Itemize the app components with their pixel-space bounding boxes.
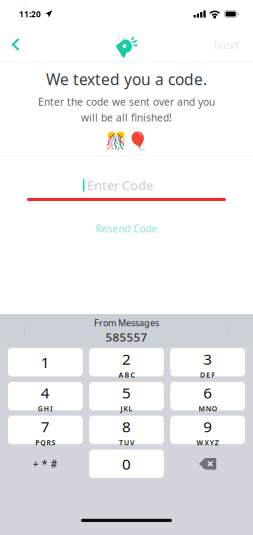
button[interactable]: 5 bbox=[89, 382, 164, 410]
staticText: GHI bbox=[38, 404, 53, 413]
button[interactable]: Next bbox=[206, 28, 247, 61]
staticText: We texted you a code. bbox=[46, 69, 207, 90]
button[interactable]: Delete bbox=[170, 449, 245, 478]
staticText: 2 bbox=[122, 348, 131, 369]
button[interactable]: 6 bbox=[170, 382, 245, 410]
staticText: WXYZ bbox=[196, 438, 219, 447]
staticText: Enter the code we sent over and you bbox=[38, 95, 215, 109]
button[interactable]: 0 bbox=[89, 449, 164, 478]
staticText: + * # bbox=[33, 457, 58, 471]
staticText: Next bbox=[214, 37, 239, 52]
staticText: MNO bbox=[198, 404, 217, 413]
staticText: ABC bbox=[118, 370, 135, 379]
staticText: DEF bbox=[200, 370, 215, 379]
staticText: 7 bbox=[41, 416, 50, 437]
button[interactable]: Resend Code bbox=[83, 217, 169, 240]
button[interactable]: 2 bbox=[89, 348, 164, 376]
button[interactable]: 4 bbox=[8, 382, 83, 410]
staticText: 4 bbox=[41, 382, 50, 403]
staticText: 5 bbox=[122, 382, 131, 403]
staticText: 8 bbox=[122, 416, 131, 437]
staticText: 11:20 bbox=[19, 8, 41, 20]
button[interactable]: 3 bbox=[170, 348, 245, 376]
staticText: 3 bbox=[203, 348, 212, 369]
button[interactable]: From Messages bbox=[0, 314, 253, 346]
button[interactable]: 8 bbox=[89, 416, 164, 444]
staticText: JKL bbox=[120, 404, 133, 413]
staticText: will be all finished! bbox=[81, 111, 172, 124]
staticText: 6 bbox=[203, 382, 212, 403]
staticText: 1 bbox=[41, 352, 50, 373]
staticText: 0 bbox=[122, 453, 131, 474]
staticText: Enter Code bbox=[87, 177, 153, 194]
staticText: 9 bbox=[203, 416, 212, 437]
button[interactable]: 7 bbox=[8, 416, 83, 444]
button[interactable]: + * # bbox=[8, 449, 83, 478]
button[interactable]: 9 bbox=[170, 416, 245, 444]
staticText: PQRS bbox=[35, 438, 55, 447]
staticText: Resend Code bbox=[95, 222, 157, 235]
staticText: 585557 bbox=[105, 329, 147, 345]
staticText: From Messages bbox=[94, 316, 159, 329]
button[interactable]: 1 bbox=[8, 348, 83, 376]
button[interactable]: Back bbox=[4, 29, 27, 60]
staticText: 🎊🎈 bbox=[104, 130, 148, 151]
staticText: TUV bbox=[119, 438, 134, 447]
